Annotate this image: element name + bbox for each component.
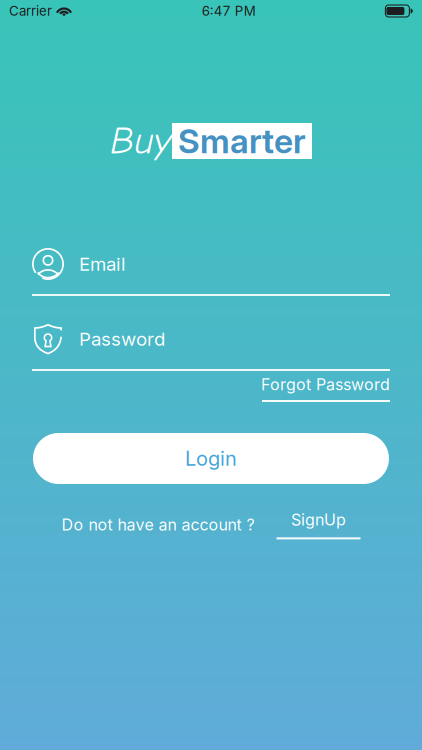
staticText: Carrier (9, 3, 52, 19)
staticText: Do not have an account ? (61, 515, 254, 534)
staticText: Forgot Password (261, 375, 390, 394)
button[interactable]: Forgot Password (258, 376, 390, 402)
button[interactable]: SignUp (276, 510, 360, 539)
staticText: Login (185, 446, 237, 471)
button[interactable]: Login (33, 433, 389, 484)
staticText: Password (79, 328, 165, 350)
staticText: Buy (110, 119, 171, 163)
staticText: Email (79, 253, 126, 275)
staticText: SignUp (291, 510, 346, 529)
staticText: 6:47 PM (202, 3, 256, 19)
staticText: Smarter (178, 121, 306, 161)
